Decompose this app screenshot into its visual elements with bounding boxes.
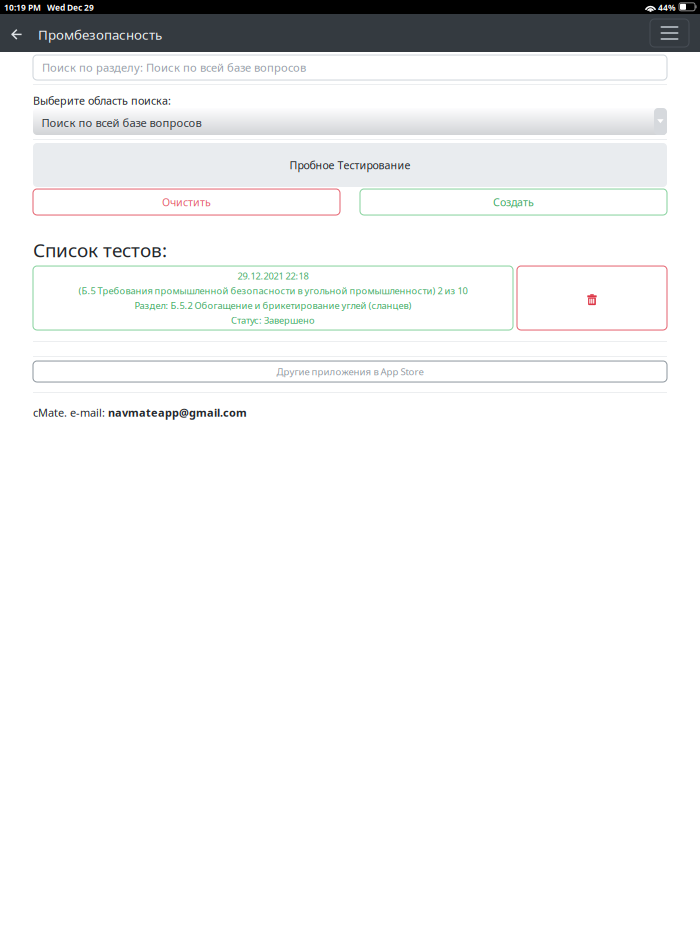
staticText: Очистить	[162, 195, 211, 209]
staticText: Поиск по разделу: Поиск по всей базе воп…	[42, 60, 306, 75]
button[interactable]: Menu	[650, 19, 689, 47]
staticText: cMate. e-mail:	[33, 405, 108, 420]
staticText: Wed Dec 29	[47, 2, 94, 13]
button[interactable]: Создать	[360, 189, 667, 215]
staticText: 29.12.2021 22:18	[237, 270, 308, 282]
staticText: 44%	[658, 2, 676, 13]
staticText: Создать	[493, 195, 534, 209]
staticText: Список тестов:	[33, 237, 167, 263]
staticText: 10:19 PM	[4, 2, 41, 13]
staticText: navmateapp@gmail.com	[108, 405, 247, 420]
staticText: Поиск по всей базе вопросов	[41, 115, 201, 130]
staticText: Выберите область поиска:	[33, 93, 171, 108]
button[interactable]: Delete test	[517, 266, 667, 330]
button[interactable]: Back	[4, 22, 28, 46]
button[interactable]: Другие приложения в App Store	[33, 361, 667, 382]
staticText: Раздел: Б.5.2 Обогащение и брикетировани…	[134, 299, 411, 312]
staticText: Промбезопасность	[38, 25, 162, 44]
staticText: Пробное Тестирование	[289, 158, 410, 172]
staticText: (Б.5 Требования промышленной безопасност…	[78, 284, 467, 297]
button[interactable]: Очистить	[33, 189, 340, 215]
staticText: Статус: Завершено	[231, 314, 315, 326]
staticText: Другие приложения в App Store	[276, 365, 423, 378]
